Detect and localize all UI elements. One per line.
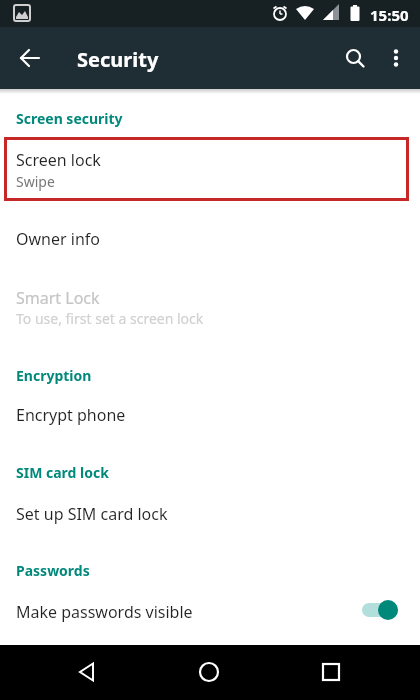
staticText: Swipe <box>16 172 55 191</box>
staticText: SIM card lock <box>16 463 109 482</box>
button[interactable]: Owner info <box>0 213 420 261</box>
button[interactable]: Make passwords visible <box>0 586 420 634</box>
staticText: Smart Lock <box>16 287 100 309</box>
button[interactable] <box>63 648 111 696</box>
button[interactable] <box>333 36 377 80</box>
staticText: To use, first set a screen lock <box>16 309 204 328</box>
button[interactable]: Encrypt phone <box>0 389 420 437</box>
button[interactable] <box>376 38 416 78</box>
staticText: Security <box>77 46 159 73</box>
button[interactable]: Screen lock <box>4 137 409 201</box>
button[interactable] <box>307 648 355 696</box>
staticText: Encryption <box>16 366 92 385</box>
button[interactable] <box>185 648 233 696</box>
staticText: Screen lock <box>16 149 101 171</box>
staticText: Encrypt phone <box>16 404 126 426</box>
button[interactable] <box>6 34 54 82</box>
button[interactable]: Set up SIM card lock <box>0 488 420 536</box>
staticText: Make passwords visible <box>16 601 193 623</box>
staticText: 15:50 <box>370 5 409 25</box>
staticText: Passwords <box>16 561 90 580</box>
staticText: Owner info <box>16 228 100 250</box>
staticText: Screen security <box>16 109 123 128</box>
staticText: Set up SIM card lock <box>16 503 168 525</box>
